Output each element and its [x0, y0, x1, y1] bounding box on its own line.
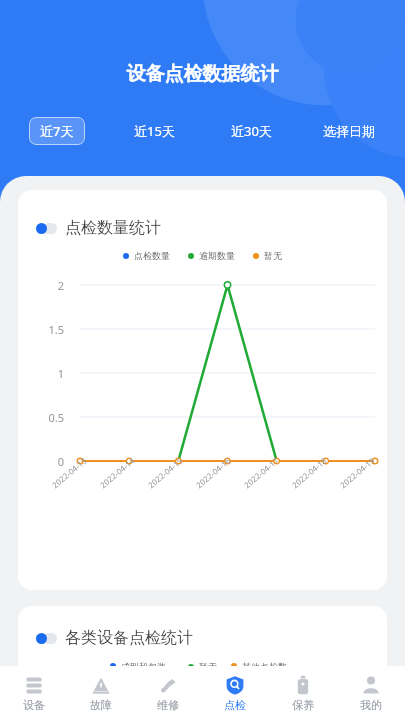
button[interactable]: 近7天 — [29, 117, 85, 145]
staticText: 近30天 — [231, 122, 272, 140]
staticText: 其他点检数… — [242, 660, 295, 672]
staticText: 2022-04-15 — [145, 455, 185, 490]
staticText: 2022-04-14 — [97, 455, 137, 490]
staticText: 点检数量统计 — [65, 218, 161, 238]
button[interactable]: 保养 — [269, 666, 337, 720]
staticText: 2022-04-13 — [49, 455, 89, 490]
button[interactable]: 点检数量统计 — [18, 190, 387, 590]
staticText: 2022-04-18 — [289, 455, 329, 490]
staticText: 0 — [18, 454, 64, 469]
staticText: 保养 — [292, 698, 314, 712]
staticText: 2 — [18, 278, 64, 293]
staticText: 设备 — [23, 698, 45, 712]
button[interactable]: 我的 — [337, 666, 405, 720]
staticText: 1 — [18, 366, 64, 381]
staticText: 2022-04-17 — [241, 455, 281, 490]
staticText: 设备点检数据统计 — [0, 62, 405, 86]
staticText: 选择日期 — [323, 123, 375, 139]
staticText: 暂无 — [199, 661, 217, 672]
staticText: 逾期数量 — [199, 250, 235, 261]
staticText: 2022-04-16 — [193, 455, 233, 490]
staticText: 近7天 — [40, 122, 74, 140]
button[interactable]: 故障 — [67, 666, 134, 720]
staticText: 故障 — [90, 698, 112, 712]
staticText: 成型和包装… — [121, 660, 174, 672]
staticText: 点检数量 — [134, 250, 170, 261]
button[interactable]: 设备 — [0, 666, 67, 720]
staticText: 点检 — [224, 698, 246, 712]
staticText: 暂无 — [264, 250, 282, 261]
staticText: 2022-04-19 — [337, 455, 377, 490]
staticText: 1.5 — [18, 322, 64, 337]
button[interactable]: 维修 — [134, 666, 201, 720]
staticText: 0.5 — [18, 410, 64, 425]
staticText: 维修 — [157, 698, 179, 712]
staticText: 我的 — [360, 698, 382, 712]
button[interactable]: 近30天 — [220, 117, 283, 145]
button[interactable]: 各类设备点检统计 — [18, 606, 387, 720]
staticText: 近15天 — [134, 122, 175, 140]
button[interactable]: 选择日期 — [312, 118, 386, 144]
button[interactable]: 近15天 — [123, 117, 186, 145]
staticText: 各类设备点检统计 — [65, 628, 193, 648]
button[interactable]: 点检 — [201, 666, 269, 720]
